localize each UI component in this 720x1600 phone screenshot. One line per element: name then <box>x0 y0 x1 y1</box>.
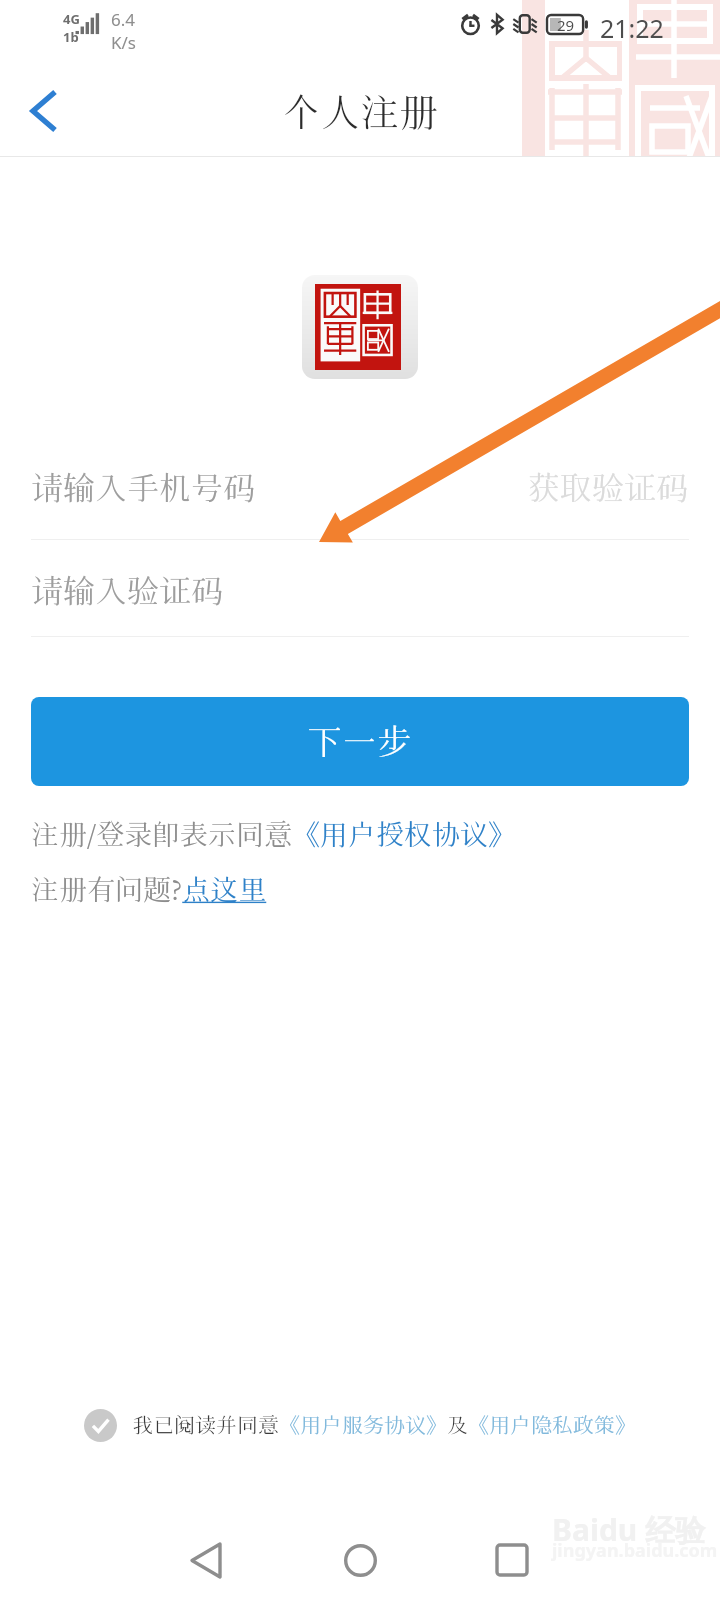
staticText: 请输入手机号码 <box>31 468 256 507</box>
staticText: 获取验证码 <box>528 468 689 507</box>
staticText: 1b <box>63 28 79 46</box>
staticText: 注册有问题?点这里 <box>31 872 267 906</box>
staticText: Baidu 经验 <box>552 1509 706 1550</box>
button[interactable]: Back <box>6 73 82 149</box>
staticText: 请输入验证码 <box>31 571 224 610</box>
staticText: 21:22 <box>600 11 664 45</box>
staticText: jingyan.baidu.com <box>552 1538 718 1563</box>
button[interactable]: Home <box>314 1514 406 1600</box>
button[interactable]: Agree checkbox <box>84 1409 117 1442</box>
staticText: 6.4 <box>111 8 136 31</box>
button[interactable]: 下一步 <box>31 697 689 786</box>
staticText: 我已阅读并同意《用户服务协议》及《用户隐私政策》 <box>132 1412 636 1438</box>
staticText: 注册/登录即表示同意《用户授权协议》 <box>31 817 516 851</box>
button[interactable]: 注册有问题?点这里 <box>31 867 267 911</box>
staticText: 下一步 <box>307 720 413 763</box>
button[interactable]: Back <box>160 1514 252 1600</box>
button[interactable]: Recent apps <box>466 1514 558 1600</box>
staticText: 29 <box>557 15 575 34</box>
button[interactable]: 注册/登录即表示同意《用户授权协议》 <box>31 812 516 856</box>
staticText: 个人注册 <box>282 88 439 136</box>
button[interactable]: 获取验证码 <box>528 468 689 507</box>
button[interactable]: 我已阅读并同意《用户服务协议》及《用户隐私政策》 <box>132 1412 636 1438</box>
staticText: K/s <box>111 31 136 54</box>
staticText: 4G <box>63 10 80 28</box>
